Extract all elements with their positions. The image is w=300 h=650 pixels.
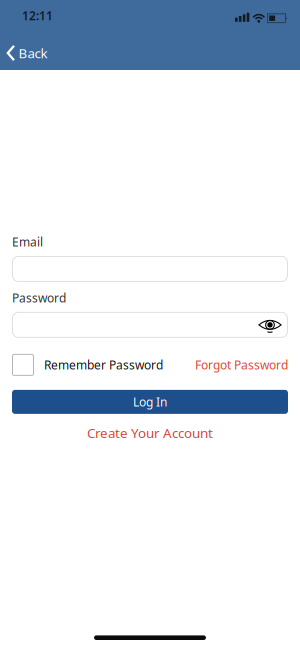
- button[interactable]: Forgot Password: [195, 357, 288, 373]
- button[interactable]: [255, 312, 285, 338]
- staticText: Back: [18, 44, 47, 62]
- staticText: Password: [12, 290, 66, 306]
- staticText: Log In: [133, 394, 167, 410]
- button[interactable]: Remember Password: [12, 354, 163, 376]
- button[interactable]: Create Your Account: [87, 424, 213, 442]
- staticText: Create Your Account: [87, 424, 213, 442]
- staticText: Email: [12, 234, 43, 250]
- button[interactable]: [12, 312, 288, 338]
- button[interactable]: Back: [0, 0, 60, 70]
- staticText: 12:11: [22, 7, 53, 23]
- button[interactable]: [12, 256, 288, 282]
- staticText: Remember Password: [44, 357, 163, 373]
- staticText: Forgot Password: [195, 357, 288, 373]
- button[interactable]: Log In: [12, 390, 288, 414]
